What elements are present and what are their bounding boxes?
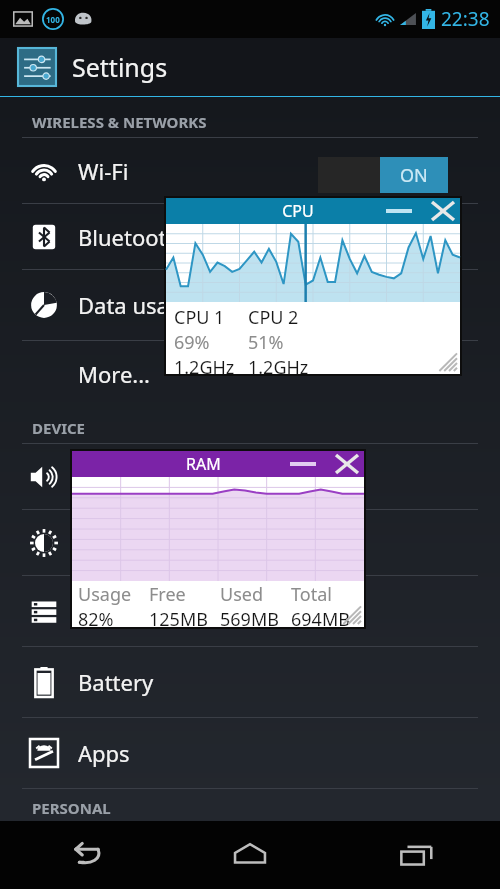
staticText: Total [291,582,332,607]
staticText: Display [78,528,154,558]
staticText: 1.2GHz [174,355,235,374]
button[interactable]: Minimize [286,452,320,476]
button[interactable]: Data usage [0,270,500,340]
staticText: 100 [46,14,60,25]
staticText: Sound [78,462,145,492]
staticText: Settings [72,50,168,84]
staticText: Free [149,582,186,607]
button[interactable]: More... [0,341,500,407]
staticText: RAM [186,453,221,475]
staticText: CPU [282,200,314,222]
staticText: CPU 2 [248,305,299,330]
staticText: 51% [248,330,284,355]
staticText: Data usage [78,290,195,320]
staticText: Bluetooth [78,222,181,252]
button[interactable]: Settings [0,38,500,96]
button[interactable]: Recents [333,821,500,889]
button[interactable]: Bluetooth [0,204,500,269]
button[interactable]: Storage [0,576,500,646]
staticText: Apps [78,738,130,768]
staticText: 569MB [220,607,279,627]
staticText: Used [220,582,264,607]
staticText: PERSONAL [32,798,111,818]
staticText: Battery [78,667,154,697]
staticText: CPU 1 [174,305,225,330]
staticText: Wi-Fi [78,156,129,186]
staticText: ON [400,163,428,188]
button[interactable]: Wi-Fi [0,138,500,203]
staticText: Storage [78,596,159,626]
staticText: More... [78,359,151,389]
staticText: WIRELESS & NETWORKS [32,112,207,132]
button[interactable]: Apps [0,718,500,788]
staticText: 82% [78,607,114,627]
staticText: 694MB [291,607,350,627]
staticText: DEVICE [32,418,85,438]
staticText: Usage [78,582,132,607]
staticText: 125MB [149,607,208,627]
staticText: 69% [174,330,210,355]
staticText: 22:38 [441,6,490,32]
button[interactable]: Minimize [382,199,416,223]
button[interactable]: Back [0,821,166,889]
button[interactable]: ON [318,157,448,193]
button[interactable]: Home [166,821,333,889]
button[interactable]: Display [0,510,500,575]
button[interactable]: Close [428,198,458,224]
button[interactable]: Close [332,451,362,477]
button[interactable]: Sound [0,444,500,509]
button[interactable]: Battery [0,647,500,717]
staticText: 1.2GHz [248,355,309,374]
